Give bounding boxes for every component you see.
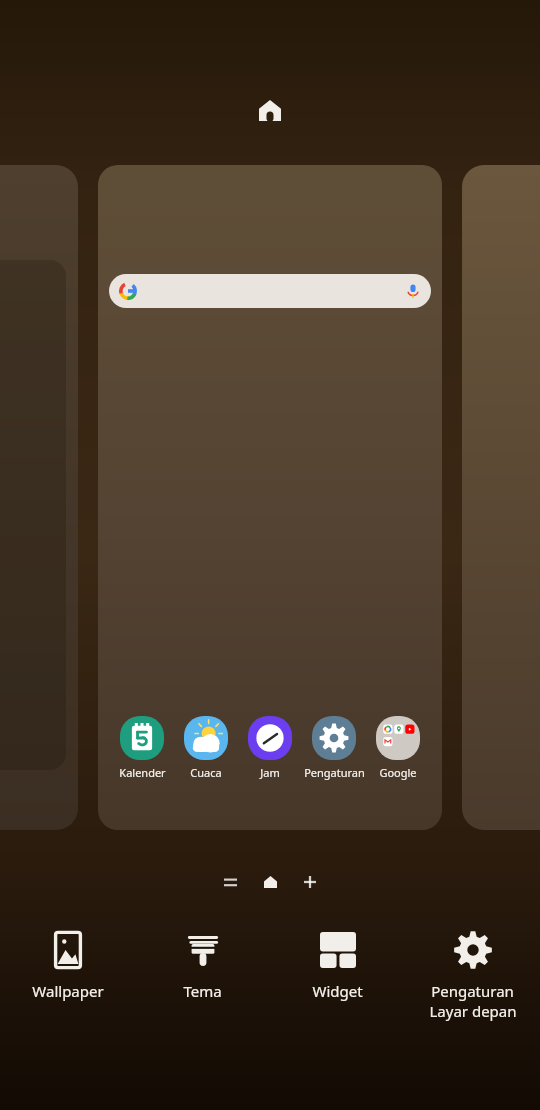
button[interactable] [109, 274, 431, 308]
button[interactable]: Kalender [98, 165, 442, 830]
staticText: Jam [260, 765, 280, 780]
button[interactable]: Jam [238, 716, 302, 780]
staticText: Pengaturan [431, 981, 514, 1001]
button[interactable]: Pengaturan [302, 716, 366, 780]
button[interactable]: All pages [218, 870, 242, 894]
staticText: Kalender [119, 765, 166, 780]
staticText: Google [379, 765, 417, 780]
button[interactable]: Next page [462, 165, 540, 830]
button[interactable]: Wallpaper [0, 925, 135, 1005]
button[interactable]: Previous page [0, 165, 78, 830]
button[interactable]: Home screen [248, 88, 292, 132]
staticText: Cuaca [190, 765, 222, 780]
button[interactable]: Google [366, 716, 430, 780]
staticText: Widget [312, 981, 363, 1001]
staticText: Wallpaper [32, 981, 104, 1001]
button[interactable]: Kalender [110, 716, 174, 780]
button[interactable]: Tema [135, 925, 270, 1005]
button[interactable]: Home page [258, 870, 282, 894]
staticText: Layar depan [429, 1001, 517, 1021]
staticText: Pengaturan [304, 765, 365, 780]
staticText: Tema [183, 981, 222, 1001]
button[interactable]: Widget [270, 925, 405, 1005]
button[interactable]: Cuaca [174, 716, 238, 780]
button[interactable]: Pengaturan Layar depan [405, 925, 540, 1025]
button[interactable]: Add page [298, 870, 322, 894]
